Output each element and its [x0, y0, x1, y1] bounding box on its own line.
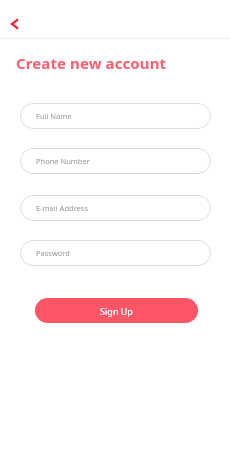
- button[interactable]: Back: [3, 12, 27, 36]
- button[interactable]: Phone Number: [20, 148, 211, 174]
- button[interactable]: Full Name: [20, 103, 211, 129]
- button[interactable]: E-mail Address: [20, 195, 211, 221]
- staticText: Sign Up: [100, 305, 133, 317]
- staticText: E-mail Address: [36, 203, 89, 213]
- staticText: Full Name: [36, 111, 72, 121]
- staticText: Create new account: [16, 53, 167, 73]
- staticText: Password: [36, 248, 70, 258]
- button[interactable]: Sign Up: [35, 298, 198, 323]
- button[interactable]: Password: [20, 240, 211, 266]
- staticText: Phone Number: [36, 156, 90, 166]
